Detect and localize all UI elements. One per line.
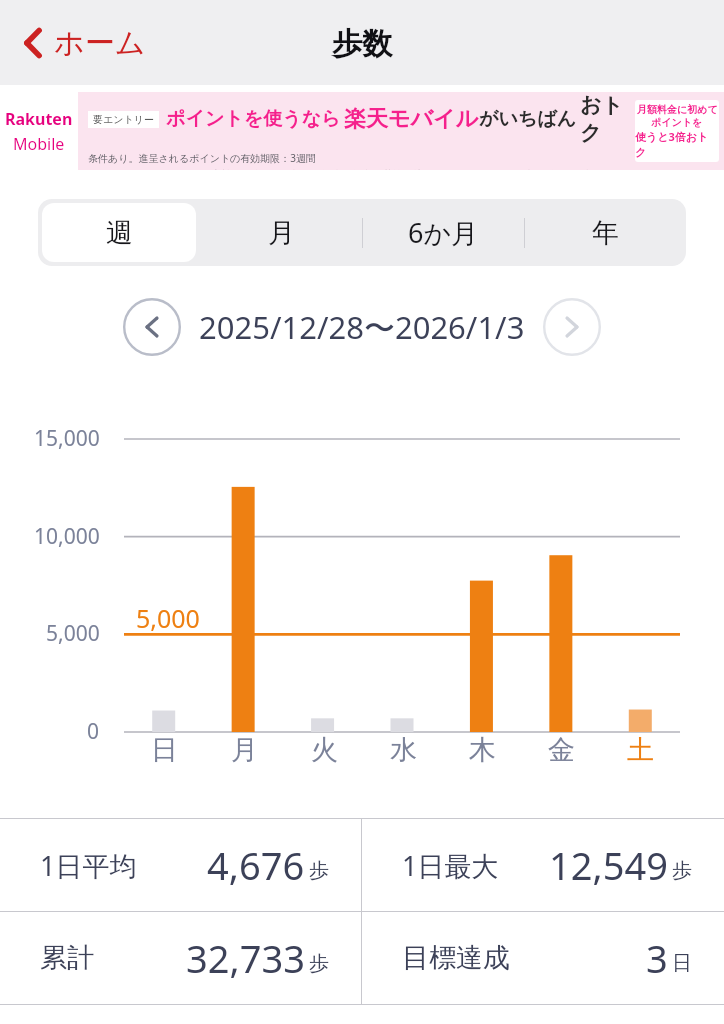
button[interactable]: 累計: [0, 912, 361, 1004]
staticText: 月額料金に初めて: [637, 103, 718, 116]
staticText: 条件あり。進呈されるポイントの有効期限：3週間: [88, 151, 317, 165]
button[interactable]: 年: [524, 199, 686, 266]
staticText: 目標達成: [402, 941, 510, 975]
button[interactable]: 6か月: [362, 199, 524, 266]
button[interactable]: Next week: [543, 298, 601, 356]
staticText: 年: [592, 216, 619, 250]
button[interactable]: 月: [200, 199, 362, 266]
staticText: ポイントを使うなら: [166, 107, 341, 131]
staticText: 6か月: [408, 214, 479, 251]
staticText: 5,000: [46, 619, 100, 648]
staticText: 累計: [40, 941, 94, 975]
staticText: 月: [231, 733, 258, 767]
staticText: がいちばん: [479, 107, 577, 131]
staticText: 1日最大: [402, 847, 499, 884]
staticText: 歩数: [332, 25, 392, 63]
staticText: 2025/12/28〜2026/1/3: [199, 306, 525, 348]
button[interactable]: 1日平均: [0, 819, 361, 911]
staticText: 月: [268, 216, 295, 250]
staticText: 土: [627, 733, 654, 767]
button[interactable]: Rakuten: [0, 92, 724, 170]
staticText: 12,549: [549, 839, 668, 891]
staticText: 日: [672, 951, 692, 976]
staticText: Mobile: [13, 133, 65, 155]
staticText: 木: [469, 733, 496, 767]
staticText: ポイントを: [651, 116, 703, 129]
staticText: 4,676: [207, 839, 305, 891]
staticText: 15,000: [34, 424, 100, 453]
button[interactable]: ホーム: [16, 18, 152, 68]
staticText: おトク: [580, 92, 629, 146]
staticText: 32,733: [186, 932, 305, 984]
staticText: 3: [646, 932, 668, 984]
staticText: ホーム: [54, 24, 146, 62]
staticText: 10,000: [34, 522, 100, 551]
staticText: 5,000: [136, 601, 200, 635]
button[interactable]: Previous week: [123, 298, 181, 356]
staticText: Rakuten: [5, 108, 73, 130]
staticText: 1日平均: [40, 847, 137, 884]
staticText: 歩: [672, 858, 692, 883]
staticText: 日: [151, 733, 178, 767]
button[interactable]: 目標達成: [362, 912, 724, 1004]
staticText: 金: [548, 733, 575, 767]
staticText: 週: [106, 216, 133, 250]
staticText: 火: [311, 733, 338, 767]
staticText: 水: [390, 733, 417, 767]
staticText: 要エントリー: [93, 113, 154, 126]
staticText: 楽天モバイル: [344, 105, 479, 133]
staticText: 使うと3倍おトク: [635, 129, 719, 159]
staticText: 歩: [309, 951, 329, 976]
button[interactable]: 1日最大: [362, 819, 724, 911]
staticText: 0: [87, 717, 100, 746]
staticText: 歩: [309, 858, 329, 883]
button[interactable]: 週: [38, 199, 200, 266]
